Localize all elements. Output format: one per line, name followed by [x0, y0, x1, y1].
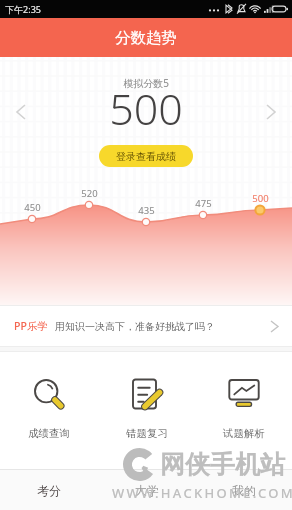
staticText: 用知识一决高下，准备好挑战了吗？: [55, 320, 215, 333]
button[interactable]: PP乐学: [0, 306, 292, 346]
staticText: 下午2:35: [5, 3, 41, 15]
button[interactable]: 试题解析: [195, 352, 292, 450]
staticText: 520: [81, 187, 98, 200]
staticText: WWW.HACKHOME.COM: [112, 484, 292, 502]
button[interactable]: 考分: [0, 470, 98, 510]
button[interactable]: 错题复习: [98, 352, 195, 450]
staticText: 435: [138, 204, 155, 217]
staticText: 475: [195, 197, 212, 210]
staticText: 成绩查询: [28, 427, 70, 440]
staticText: 网侠手机站: [160, 449, 285, 480]
button[interactable]: 大学: [98, 470, 195, 510]
button[interactable]: 下一次: [259, 100, 283, 124]
staticText: 我的: [232, 483, 256, 498]
staticText: 考分: [37, 483, 61, 498]
staticText: 500: [109, 79, 183, 138]
staticText: 试题解析: [223, 427, 265, 440]
staticText: 模拟分数5: [123, 76, 169, 90]
button[interactable]: 我的: [195, 470, 292, 510]
staticText: 分数趋势: [115, 28, 177, 48]
staticText: 500: [252, 192, 269, 205]
button[interactable]: 登录查看成绩: [99, 145, 193, 167]
staticText: PP乐学: [14, 319, 48, 333]
staticText: 错题复习: [126, 427, 168, 440]
staticText: 大学: [135, 483, 159, 498]
staticText: 登录查看成绩: [116, 150, 176, 163]
staticText: 450: [24, 201, 41, 214]
button[interactable]: 上一次: [9, 100, 33, 124]
button[interactable]: 成绩查询: [0, 352, 98, 450]
